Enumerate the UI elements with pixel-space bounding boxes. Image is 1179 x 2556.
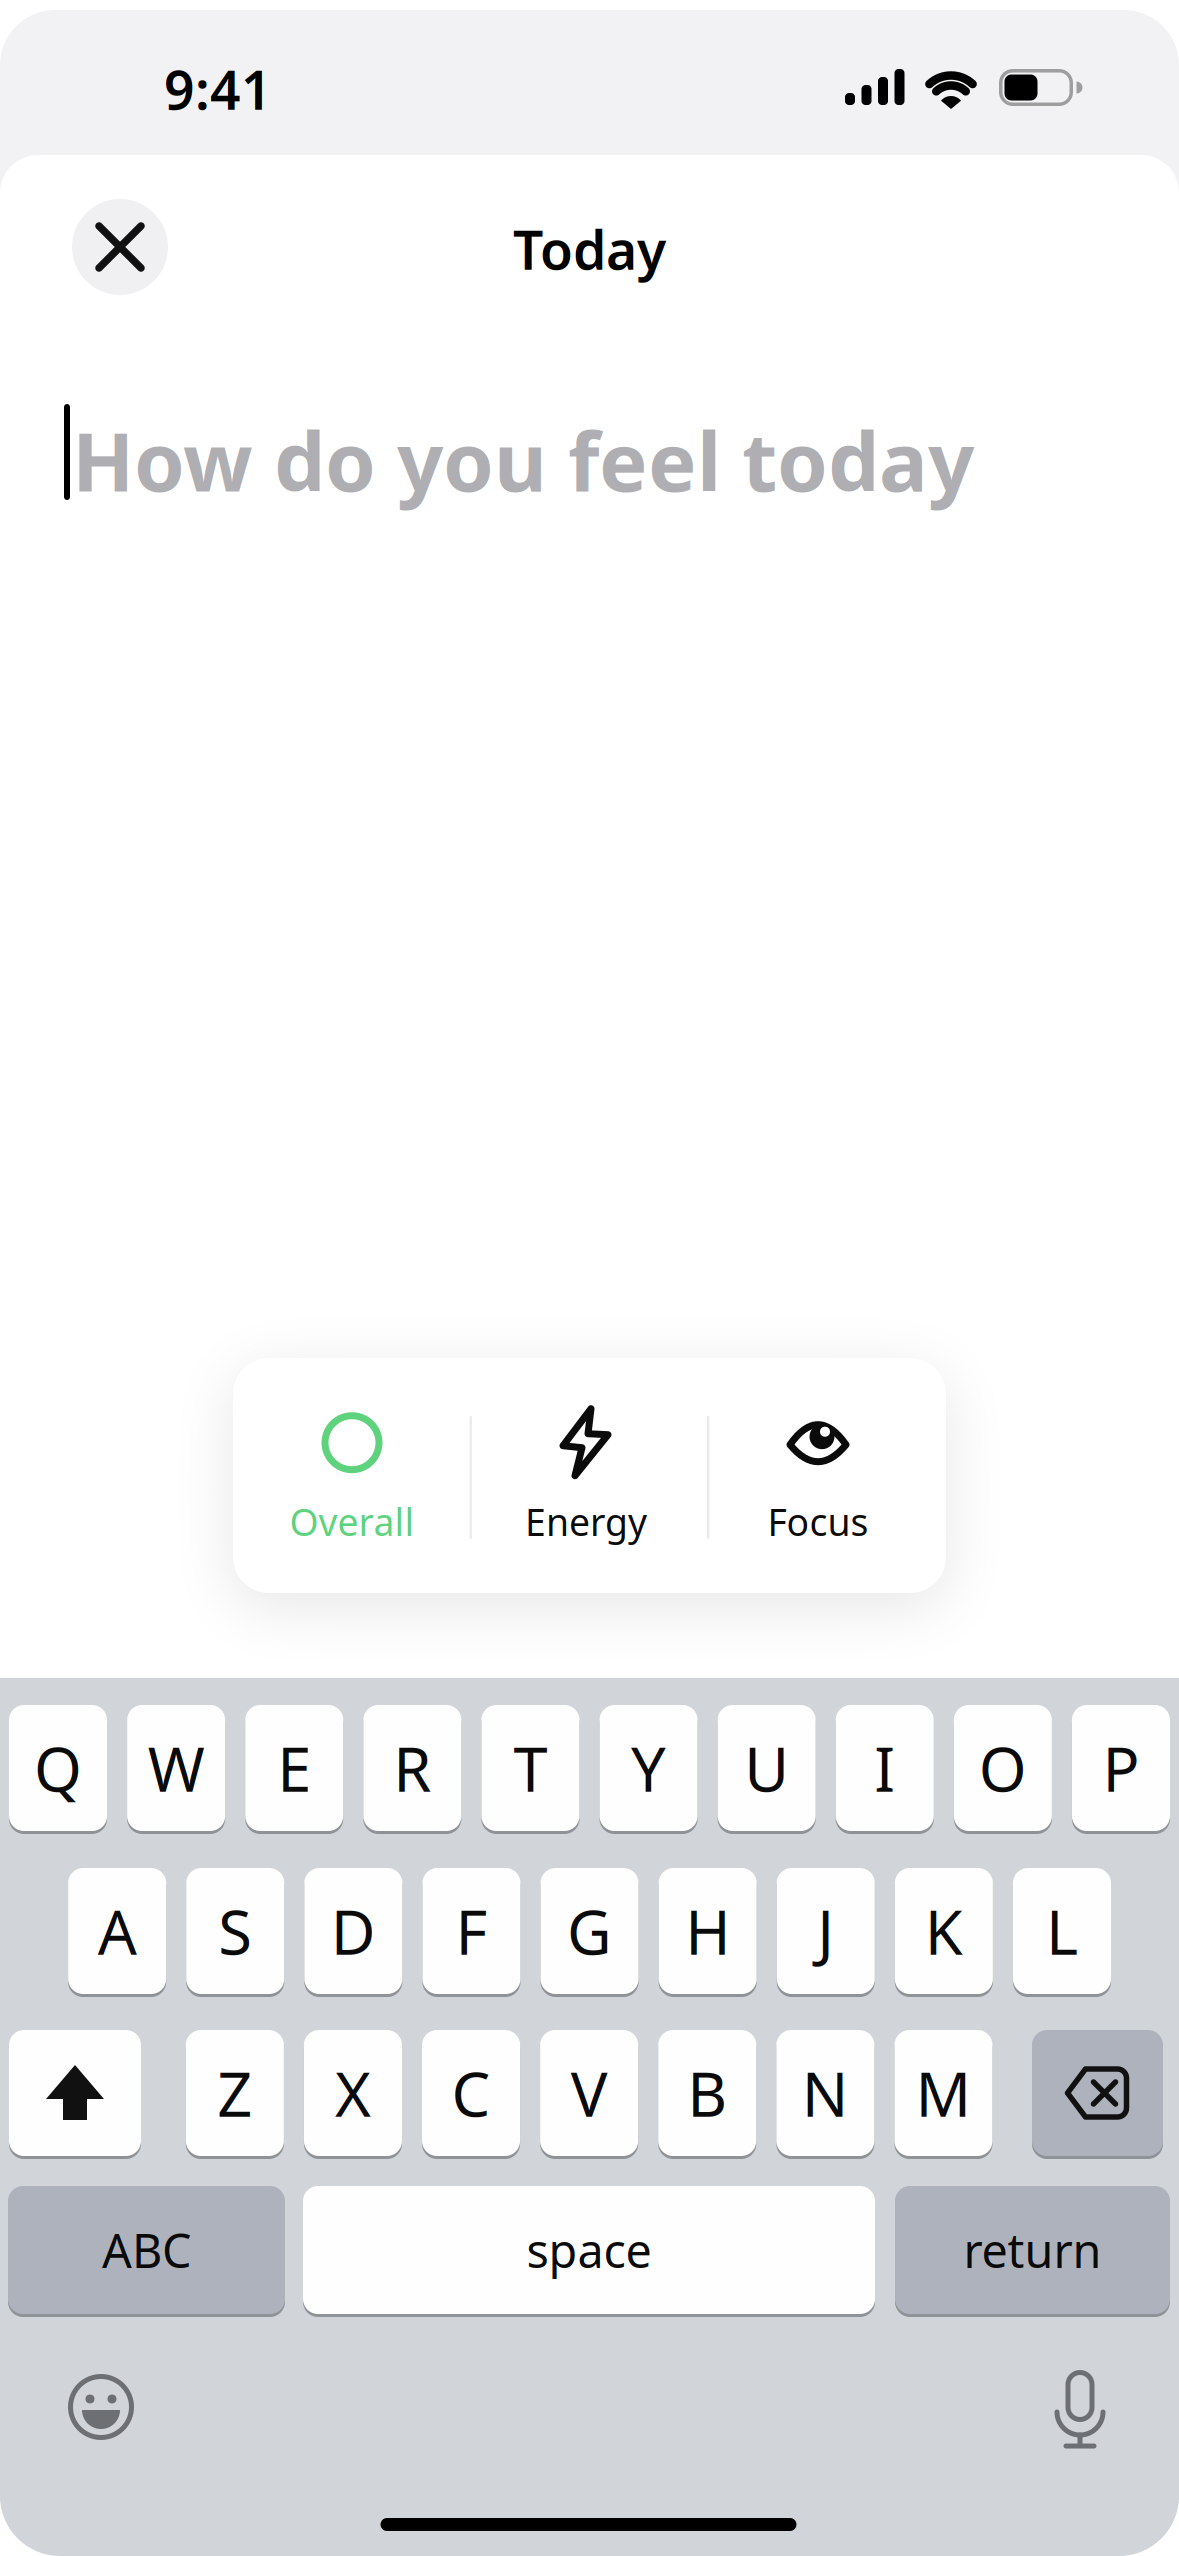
button[interactable]: return [895,2186,1170,2314]
staticText: T [513,1727,547,1809]
staticText: Y [631,1727,666,1809]
staticText: J [817,1890,834,1972]
button[interactable]: U [718,1705,816,1831]
staticText: N [802,2052,849,2134]
button[interactable]: Emoji [63,2369,139,2445]
staticText: D [331,1890,376,1972]
button[interactable]: Focus [703,1358,933,1593]
staticText: V [571,2052,608,2134]
staticText: H [685,1890,730,1972]
button[interactable]: E [245,1705,343,1831]
button[interactable]: Close [72,199,168,295]
button[interactable]: R [363,1705,461,1831]
staticText: Today [513,214,666,284]
button[interactable]: B [658,2030,756,2156]
button[interactable]: ABC [8,2186,285,2314]
button[interactable]: F [422,1868,520,1994]
staticText: O [979,1727,1027,1809]
button[interactable]: Overall [237,1358,467,1593]
button[interactable]: Z [186,2030,284,2156]
staticText: W [148,1727,205,1809]
staticText: K [925,1890,963,1972]
button[interactable]: Energy [471,1358,701,1593]
button[interactable]: O [954,1705,1052,1831]
button[interactable]: J [777,1868,875,1994]
button[interactable]: P [1072,1705,1170,1831]
staticText: ABC [102,2219,191,2281]
staticText: U [744,1727,789,1809]
button[interactable]: G [540,1868,639,1994]
staticText: G [567,1890,612,1972]
button[interactable]: I [836,1705,934,1831]
staticText: F [455,1890,487,1972]
button[interactable]: A [68,1868,166,1994]
staticText: Overall [289,1497,414,1546]
staticText: Q [34,1727,82,1809]
staticText: L [1046,1890,1078,1972]
staticText: return [963,2219,1101,2281]
button[interactable]: L [1013,1868,1111,1994]
staticText: C [452,2052,491,2134]
button[interactable]: Dictate [1042,2368,1118,2452]
button[interactable]: Q [9,1705,107,1831]
staticText: I [874,1727,895,1809]
staticText: How do you feel today [72,406,974,514]
button[interactable]: Y [599,1705,698,1831]
button[interactable]: T [481,1705,579,1831]
button[interactable]: N [776,2030,874,2156]
button[interactable]: K [895,1868,993,1994]
staticText: R [393,1727,431,1809]
staticText: 9:41 [164,54,272,124]
staticText: space [526,2219,651,2281]
staticText: Z [217,2052,252,2134]
staticText: A [98,1890,137,1972]
button[interactable]: Shift [9,2030,141,2156]
staticText: M [915,2052,971,2134]
button[interactable]: H [659,1868,757,1994]
button[interactable]: C [422,2030,520,2156]
staticText: Focus [767,1497,868,1546]
staticText: P [1102,1727,1139,1809]
staticText: Energy [525,1497,647,1546]
staticText: B [687,2052,727,2134]
button[interactable]: W [127,1705,225,1831]
button[interactable]: D [304,1868,402,1994]
button[interactable]: space [303,2186,875,2314]
button[interactable]: X [304,2030,402,2156]
button[interactable]: S [186,1868,284,1994]
button[interactable]: M [894,2030,992,2156]
staticText: E [277,1727,311,1809]
staticText: S [218,1890,252,1972]
staticText: X [335,2052,371,2134]
button[interactable]: Delete [1032,2030,1163,2156]
button[interactable]: V [540,2030,638,2156]
